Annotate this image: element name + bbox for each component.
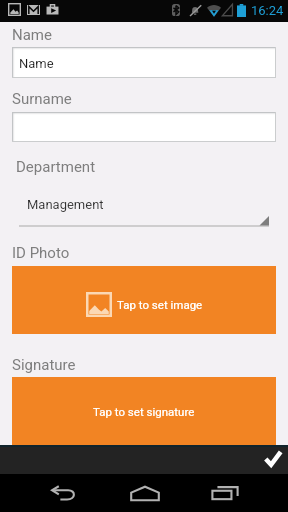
staticText: Department — [16, 158, 96, 176]
staticText: Tap to set image — [117, 298, 203, 311]
button[interactable]: Done — [255, 444, 288, 473]
staticText: Name — [12, 26, 52, 44]
button[interactable]: Management — [19, 196, 269, 227]
button[interactable]: Recent apps — [189, 474, 261, 512]
button[interactable]: Tap to set image — [12, 266, 276, 334]
button[interactable]: Tap to set signature — [12, 377, 276, 445]
staticText: Surname — [12, 90, 72, 108]
staticText: ID Photo — [12, 244, 70, 262]
staticText: Management — [27, 197, 104, 212]
staticText: 16:24 — [251, 3, 284, 18]
button[interactable] — [12, 112, 276, 142]
button[interactable]: Back — [28, 474, 100, 512]
staticText: Tap to set signature — [93, 405, 195, 418]
button[interactable]: Home — [109, 474, 181, 512]
staticText: Name — [19, 56, 54, 71]
staticText: Signature — [12, 356, 76, 374]
button[interactable]: Name — [12, 47, 276, 78]
